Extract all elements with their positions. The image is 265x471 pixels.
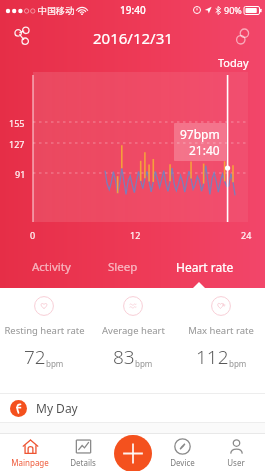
staticText: 127 — [9, 138, 25, 150]
button[interactable]: Average heart — [89, 296, 177, 370]
staticText: 112 — [196, 344, 229, 370]
staticText: Max heart rate — [188, 324, 254, 337]
staticText: 91 — [15, 168, 26, 180]
staticText: Device — [170, 457, 195, 468]
staticText: 0 — [30, 229, 36, 241]
button[interactable]: Max heart rate — [177, 296, 265, 370]
staticText: 19:40 — [120, 3, 146, 17]
button[interactable]: My Day — [0, 394, 265, 422]
button[interactable]: Add — [114, 435, 152, 471]
button[interactable]: Mainpage — [6, 438, 54, 468]
button[interactable]: Activity — [26, 255, 77, 279]
staticText: 24 — [241, 229, 252, 241]
staticText: bpm — [46, 358, 64, 369]
button[interactable]: Link device — [227, 23, 257, 53]
button[interactable]: Sleep — [102, 255, 144, 279]
button[interactable]: Details — [59, 438, 107, 468]
staticText: 21:40 — [189, 142, 220, 158]
staticText: 90% — [224, 4, 242, 16]
staticText: 83 — [113, 344, 135, 370]
staticText: 97bpm — [180, 126, 220, 142]
staticText: Heart rate — [176, 259, 234, 275]
staticText: 155 — [9, 117, 25, 129]
staticText: Mainpage — [11, 457, 49, 468]
staticText: Today — [218, 55, 249, 70]
staticText: Activity — [32, 259, 71, 275]
staticText: 2016/12/31 — [93, 28, 173, 48]
staticText: Average heart — [102, 324, 165, 337]
staticText: User — [227, 457, 245, 468]
staticText: bpm — [135, 358, 153, 369]
staticText: 72 — [24, 344, 46, 370]
staticText: bpm — [229, 358, 247, 369]
staticText: 中国移动 — [38, 5, 74, 16]
staticText: Resting heart rate — [4, 324, 85, 337]
staticText: My Day — [36, 400, 78, 416]
button[interactable]: User — [212, 438, 260, 468]
button[interactable]: Heart rate — [170, 255, 240, 279]
staticText: Sleep — [108, 259, 138, 275]
staticText: Details — [70, 457, 96, 468]
button[interactable]: Device — [158, 438, 206, 468]
button[interactable]: Share — [6, 22, 38, 54]
button[interactable]: Resting heart rate — [0, 296, 88, 370]
staticText: 12 — [130, 229, 141, 241]
